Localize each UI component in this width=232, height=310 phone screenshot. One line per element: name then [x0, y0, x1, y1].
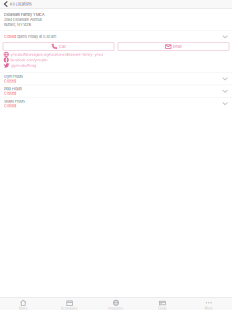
- staticText: Delaware Family YMCA: [4, 12, 45, 17]
- staticText: Cards: [158, 307, 167, 310]
- staticText: Buffalo, NY 14216: [4, 22, 31, 27]
- staticText: Pool Hours: [4, 86, 22, 91]
- staticText: @ymcabuffniag: [11, 63, 36, 67]
- staticText: Home: [19, 307, 28, 310]
- button[interactable]: Studio Hours: [0, 97, 232, 109]
- staticText: Closed: [4, 91, 16, 96]
- button[interactable]: Cards: [139, 300, 186, 310]
- button[interactable]: More: [186, 300, 232, 310]
- button[interactable]: Programs: [93, 300, 139, 310]
- staticText: Closed: [4, 104, 16, 108]
- button[interactable]: Email: [118, 42, 229, 50]
- staticText: opens Friday at 5:30 am: [17, 34, 56, 39]
- staticText: 2564 Delaware Avenue: [4, 17, 42, 22]
- staticText: Studio Hours: [4, 99, 25, 103]
- button[interactable]: facebook.com/ymcabn: [0, 57, 232, 62]
- button[interactable]: Schedules: [46, 300, 93, 310]
- staticText: Gym Hours: [4, 74, 23, 79]
- staticText: Schedules: [61, 307, 78, 310]
- staticText: ymcabuffaloniagara.org/locations/delawar…: [10, 52, 103, 56]
- button[interactable]: Call: [3, 42, 114, 50]
- staticText: Closed: [4, 79, 16, 83]
- button[interactable]: Pool Hours: [0, 85, 232, 97]
- staticText: Programs: [108, 307, 123, 310]
- button[interactable]: ymcabuffaloniagara.org/locations/delawar…: [0, 52, 232, 57]
- button[interactable]: Gym Hours: [0, 72, 232, 85]
- staticText: Email: [173, 44, 182, 49]
- button[interactable]: @ymcabuffniag: [0, 63, 232, 68]
- button[interactable]: All Locations: [0, 0, 232, 8]
- staticText: All Locations: [10, 2, 32, 6]
- button[interactable]: Home: [0, 300, 46, 310]
- staticText: Call: [59, 44, 66, 49]
- staticText: Closed: [4, 34, 16, 39]
- staticText: More: [205, 307, 213, 310]
- button[interactable]: Closed: [0, 31, 232, 42]
- staticText: facebook.com/ymcabn: [10, 58, 47, 62]
